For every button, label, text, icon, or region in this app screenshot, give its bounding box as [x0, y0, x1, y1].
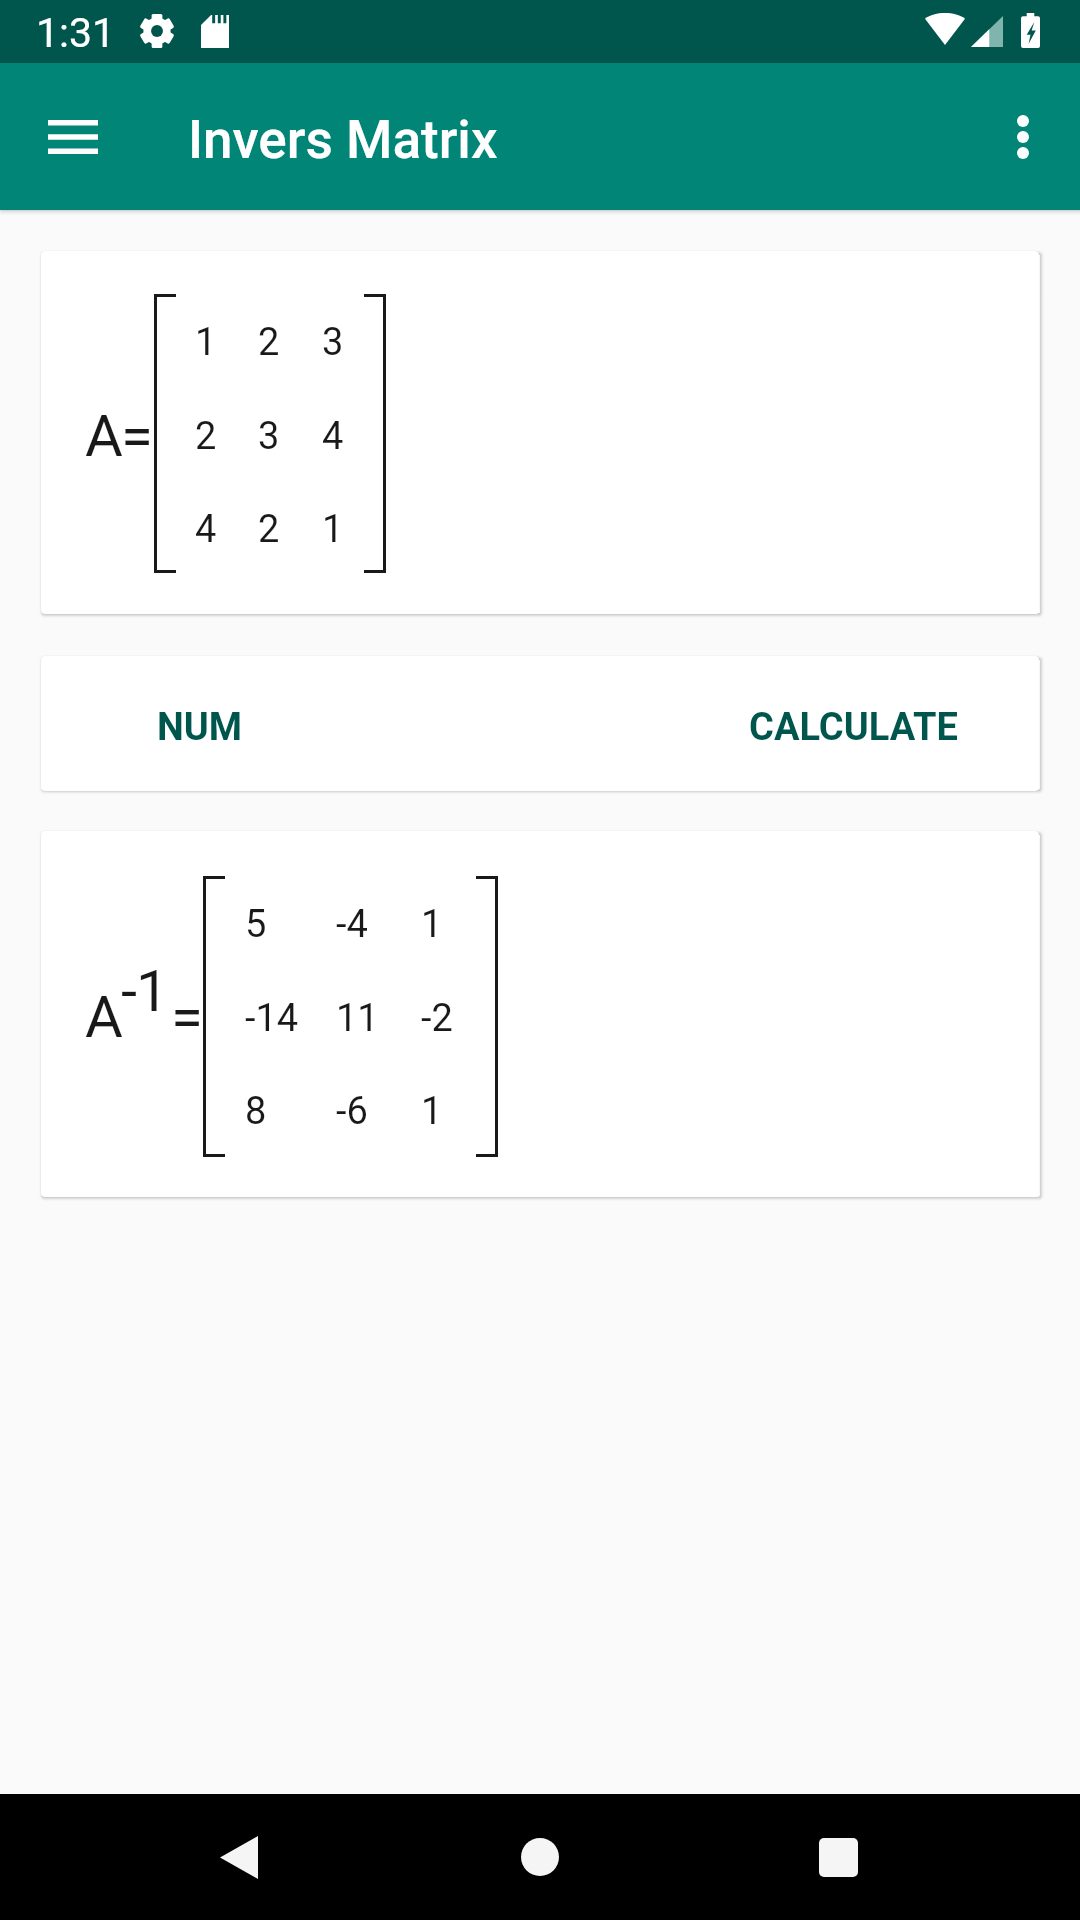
staticText: CALCULATE	[749, 705, 958, 750]
button[interactable]: Back	[179, 1794, 299, 1920]
staticText: -14	[245, 996, 299, 1041]
staticText: -2	[421, 996, 453, 1041]
staticText: 2	[195, 414, 217, 459]
button[interactable]: 1	[322, 499, 374, 559]
staticText: A	[85, 402, 123, 470]
button[interactable]: More options	[975, 63, 1071, 209]
staticText: 1	[322, 507, 344, 552]
button[interactable]: 4	[322, 406, 374, 466]
staticText: 5	[245, 902, 267, 947]
button[interactable]: Recent apps	[778, 1794, 898, 1920]
staticText: 3	[258, 414, 280, 459]
staticText: -6	[336, 1089, 368, 1134]
staticText: =	[171, 983, 203, 1051]
staticText: 8	[245, 1089, 267, 1134]
staticText: 1	[136, 957, 169, 1025]
button[interactable]: CALCULATE	[739, 688, 968, 767]
staticText: =	[121, 402, 153, 470]
button[interactable]: NUM	[147, 688, 253, 767]
button[interactable]: 1	[195, 312, 247, 372]
button[interactable]: Home	[480, 1794, 600, 1920]
staticText: 1	[421, 902, 443, 947]
button[interactable]: 2	[258, 499, 310, 559]
staticText: 1:31	[36, 9, 116, 57]
staticText: Invers Matrix	[188, 109, 498, 171]
button[interactable]: 2	[258, 312, 310, 372]
staticText: 4	[322, 414, 344, 459]
staticText: 2	[258, 320, 280, 365]
staticText: A	[85, 983, 123, 1051]
staticText: 3	[322, 320, 344, 365]
staticText: 1	[421, 1089, 443, 1134]
staticText: 11	[336, 996, 379, 1041]
staticText: -	[121, 957, 138, 1025]
staticText: -4	[336, 902, 368, 947]
button[interactable]: 2	[195, 406, 247, 466]
staticText: 1	[195, 320, 217, 365]
staticText: 2	[258, 507, 280, 552]
staticText: 4	[195, 507, 217, 552]
button[interactable]: 3	[258, 406, 310, 466]
button[interactable]: 4	[195, 499, 247, 559]
button[interactable]: Open navigation drawer	[25, 89, 121, 185]
button[interactable]: 3	[322, 312, 374, 372]
staticText: NUM	[157, 705, 243, 750]
